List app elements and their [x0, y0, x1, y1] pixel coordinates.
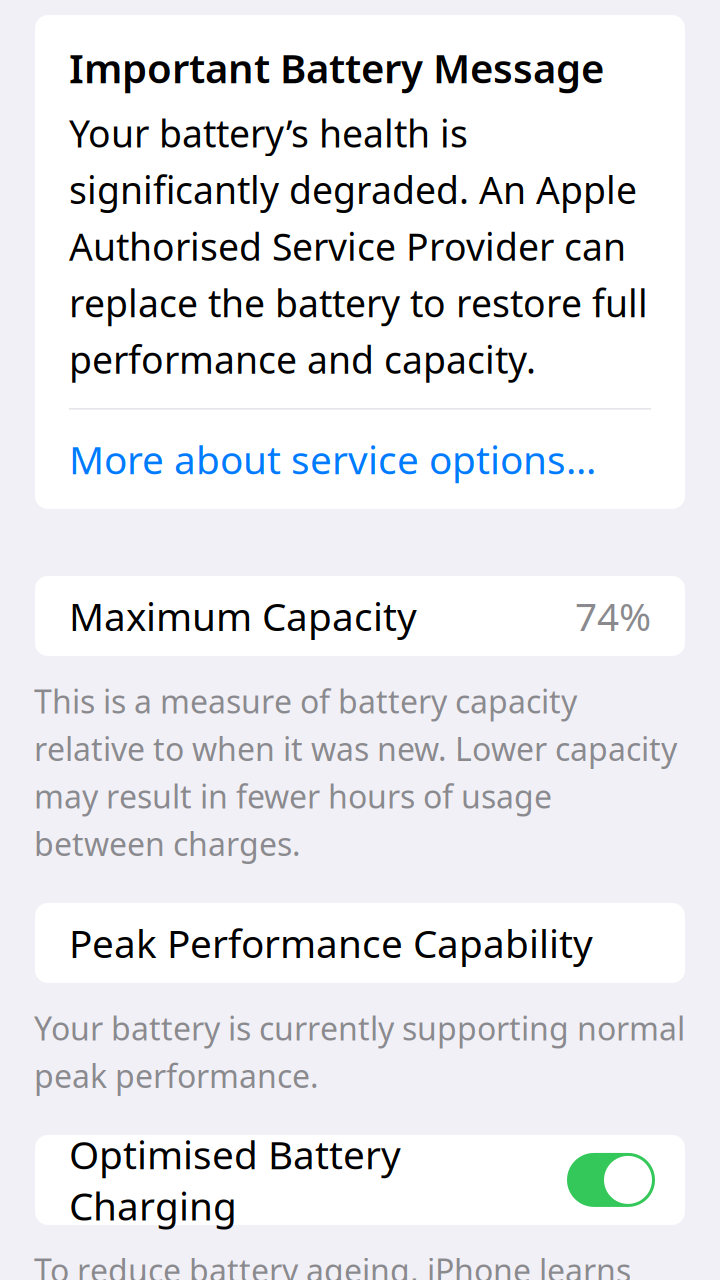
- staticText: To reduce battery ageing, iPhone learns …: [34, 1249, 652, 1280]
- staticText: Your battery is currently supporting nor…: [34, 1007, 685, 1097]
- button[interactable]: Maximum Capacity: [35, 576, 685, 656]
- staticText: Optimised Battery Charging: [69, 1129, 401, 1231]
- button[interactable]: Optimised Battery Charging: [35, 1135, 685, 1225]
- button[interactable]: More about service options...: [69, 410, 651, 509]
- staticText: More about service options...: [69, 434, 596, 485]
- staticText: Important Battery Message: [69, 41, 604, 94]
- staticText: Peak Performance Capability: [69, 917, 593, 969]
- staticText: Maximum Capacity: [69, 590, 417, 642]
- staticText: This is a measure of battery capacity re…: [34, 680, 677, 865]
- staticText: Your battery’s health is significantly d…: [69, 108, 648, 384]
- button[interactable]: Peak Performance Capability: [35, 903, 685, 983]
- staticText: 74%: [575, 590, 651, 642]
